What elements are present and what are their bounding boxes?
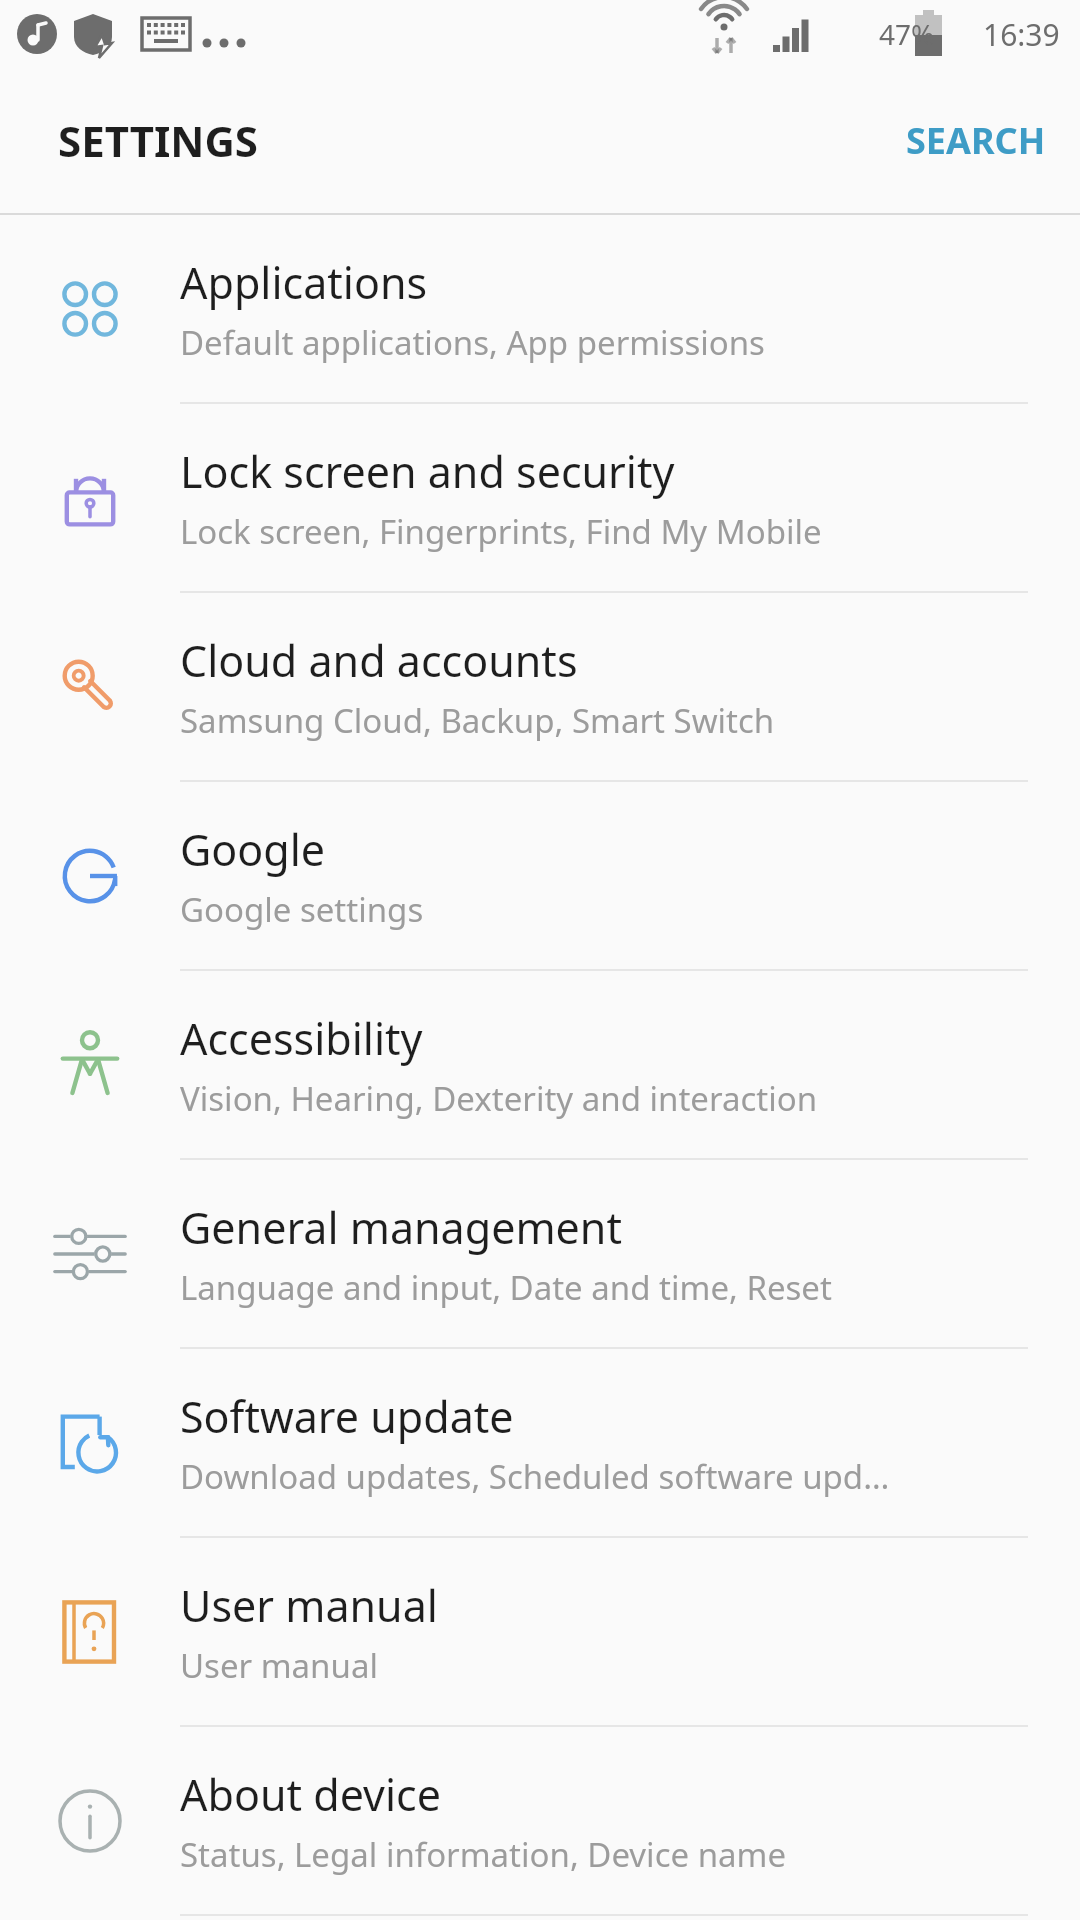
button[interactable]: General management bbox=[0, 1160, 1080, 1347]
staticText: Accessibility bbox=[180, 1009, 423, 1068]
staticText: About device bbox=[180, 1765, 441, 1824]
button[interactable]: SEARCH bbox=[872, 96, 1080, 185]
staticText: Lock screen and security bbox=[180, 442, 675, 501]
button[interactable]: User manual bbox=[0, 1538, 1080, 1725]
staticText: Lock screen, Fingerprints, Find My Mobil… bbox=[180, 509, 822, 554]
other: Applications bbox=[50, 269, 130, 349]
staticText: Default applications, App permissions bbox=[180, 320, 765, 365]
other: User manual bbox=[50, 1592, 130, 1672]
other: General management bbox=[50, 1214, 130, 1294]
other: Software update bbox=[50, 1403, 130, 1483]
staticText: Applications bbox=[180, 253, 428, 312]
staticText: SEARCH bbox=[906, 116, 1046, 165]
staticText: User manual bbox=[180, 1576, 438, 1635]
staticText: Samsung Cloud, Backup, Smart Switch bbox=[180, 698, 775, 743]
staticText: Status, Legal information, Device name bbox=[180, 1832, 787, 1877]
button[interactable]: Software update bbox=[0, 1349, 1080, 1536]
other: Lock screen and security bbox=[50, 458, 130, 538]
staticText: 16:39 bbox=[983, 14, 1060, 55]
staticText: Google settings bbox=[180, 887, 424, 932]
other: Cloud and accounts bbox=[50, 647, 130, 727]
button[interactable]: Lock screen and security bbox=[0, 404, 1080, 591]
staticText: 47% bbox=[879, 15, 935, 53]
button[interactable]: Cloud and accounts bbox=[0, 593, 1080, 780]
staticText: General management bbox=[180, 1198, 622, 1257]
staticText: Vision, Hearing, Dexterity and interacti… bbox=[180, 1076, 818, 1121]
staticText: SETTINGS bbox=[58, 112, 259, 169]
button[interactable]: Google bbox=[0, 782, 1080, 969]
staticText: Download updates, Scheduled software upd… bbox=[180, 1454, 890, 1499]
button[interactable]: Applications bbox=[0, 215, 1080, 402]
staticText: User manual bbox=[180, 1643, 378, 1688]
button[interactable]: About device bbox=[0, 1727, 1080, 1914]
other: Accessibility bbox=[50, 1025, 130, 1105]
other: Google bbox=[50, 836, 130, 916]
button[interactable]: Accessibility bbox=[0, 971, 1080, 1158]
staticText: Google bbox=[180, 820, 326, 879]
staticText: Cloud and accounts bbox=[180, 631, 578, 690]
staticText: Language and input, Date and time, Reset bbox=[180, 1265, 832, 1310]
staticText: Software update bbox=[180, 1387, 514, 1446]
other: About device bbox=[50, 1781, 130, 1861]
